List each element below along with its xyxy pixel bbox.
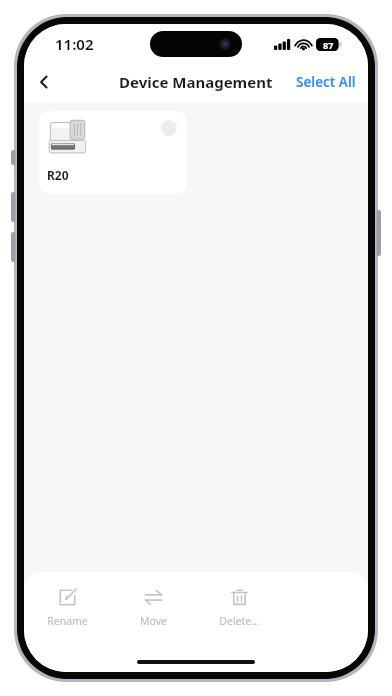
staticText: 87	[323, 39, 334, 51]
button[interactable]: Back	[24, 62, 64, 102]
staticText: Delete...	[219, 614, 260, 628]
staticText: Select All	[296, 73, 356, 91]
button[interactable]: Move	[110, 584, 196, 632]
staticText: Device Management	[119, 72, 273, 92]
button[interactable]: R20	[39, 111, 187, 194]
staticText: 11:02	[55, 34, 94, 54]
button[interactable]: Delete...	[196, 584, 282, 632]
button[interactable]: Select All	[290, 67, 362, 97]
staticText: R20	[47, 167, 69, 183]
staticText: Move	[140, 614, 167, 628]
staticText: Rename	[47, 614, 88, 628]
button[interactable]: Rename	[24, 584, 110, 632]
button[interactable]: Select device	[161, 120, 177, 136]
